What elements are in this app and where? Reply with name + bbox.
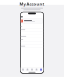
- button[interactable]: Tab: [21, 69, 25, 71]
- button[interactable]: Tab: [30, 69, 34, 71]
- button[interactable]: Tab: [34, 69, 39, 71]
- button[interactable]: [13, 31, 51, 35]
- button[interactable]: [13, 25, 51, 28]
- button[interactable]: [13, 45, 51, 48]
- button[interactable]: [13, 35, 51, 38]
- button[interactable]: [13, 38, 51, 41]
- button[interactable]: Account tab: [39, 69, 43, 71]
- button[interactable]: Tab: [25, 69, 30, 71]
- button[interactable]: [13, 41, 51, 45]
- button[interactable]: [13, 28, 51, 31]
- staticText: My Account: [19, 1, 44, 6]
- button[interactable]: [21, 18, 42, 23]
